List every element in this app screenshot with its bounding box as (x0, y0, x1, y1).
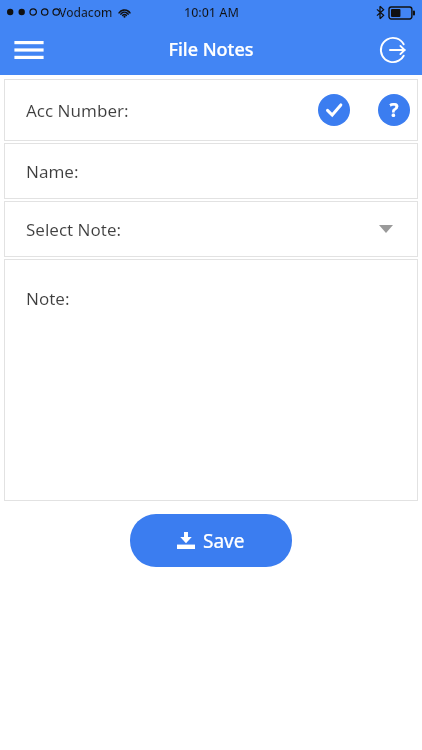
staticText: Name: (26, 160, 79, 183)
staticText: ? (389, 97, 399, 123)
staticText: Vodacom (59, 4, 113, 20)
button[interactable]: Note: (4, 259, 418, 501)
button[interactable]: Save (130, 514, 292, 567)
button[interactable]: Log out (370, 27, 416, 73)
staticText: 10:01 AM (184, 4, 239, 21)
button[interactable]: Open note list (374, 217, 398, 241)
staticText: File Notes (168, 37, 254, 62)
staticText: Acc Number: (26, 99, 129, 122)
button[interactable]: Select Note: (4, 201, 418, 257)
staticText: Note: (26, 287, 70, 310)
button[interactable]: Help (378, 94, 410, 126)
button[interactable]: Confirm account number (318, 94, 350, 126)
staticText: Save (203, 528, 245, 554)
button[interactable]: Menu (6, 27, 52, 73)
staticText: Select Note: (26, 218, 122, 241)
